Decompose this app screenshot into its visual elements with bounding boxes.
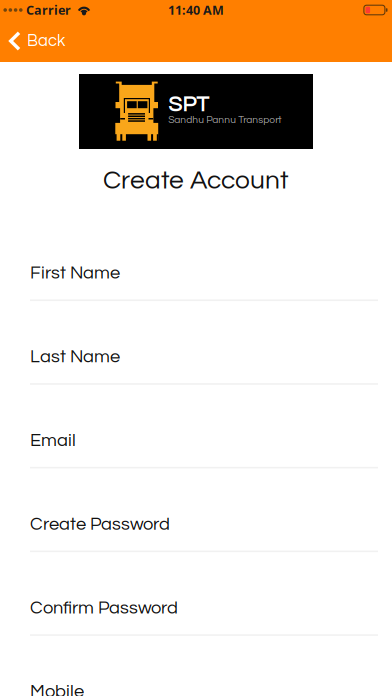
staticText: Create Password	[30, 515, 170, 533]
staticText: 11:40 AM	[168, 1, 224, 19]
button[interactable]: Back	[0, 20, 75, 62]
staticText: SPT	[168, 93, 209, 116]
staticText: Back	[27, 32, 65, 49]
staticText: Sandhu Pannu Transport	[168, 115, 281, 125]
button[interactable]: Email	[30, 417, 378, 468]
button[interactable]: Mobile	[30, 669, 378, 696]
staticText: Mobile	[30, 682, 84, 696]
staticText: Create Account	[103, 167, 289, 194]
staticText: Confirm Password	[30, 598, 178, 617]
staticText: Last Name	[30, 347, 120, 366]
staticText: Carrier	[26, 1, 71, 19]
button[interactable]: First Name	[30, 250, 378, 301]
button[interactable]: Last Name	[30, 334, 378, 385]
staticText: Email	[30, 431, 76, 450]
staticText: First Name	[30, 264, 120, 282]
button[interactable]: Confirm Password	[30, 585, 378, 636]
button[interactable]: Create Password	[30, 501, 378, 552]
